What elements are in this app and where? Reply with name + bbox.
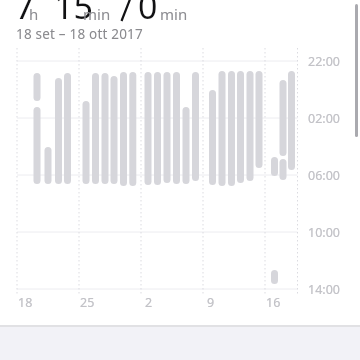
- staticText: min: [160, 4, 188, 24]
- staticText: 0: [138, 0, 158, 29]
- staticText: 18: [18, 294, 33, 311]
- staticText: 06:00: [308, 167, 340, 184]
- staticText: 2: [145, 294, 153, 311]
- staticText: h: [29, 4, 39, 24]
- staticText: 10:00: [308, 224, 340, 241]
- staticText: 16: [266, 294, 281, 311]
- staticText: min: [83, 4, 111, 24]
- staticText: 15: [54, 0, 93, 29]
- staticText: 7: [15, 0, 35, 29]
- staticText: 22:00: [308, 53, 340, 70]
- staticText: 9: [207, 294, 215, 311]
- staticText: 25: [80, 294, 95, 311]
- staticText: 02:00: [308, 110, 340, 127]
- staticText: 14:00: [308, 281, 340, 298]
- staticText: 18 set – 18 ott 2017: [16, 25, 143, 43]
